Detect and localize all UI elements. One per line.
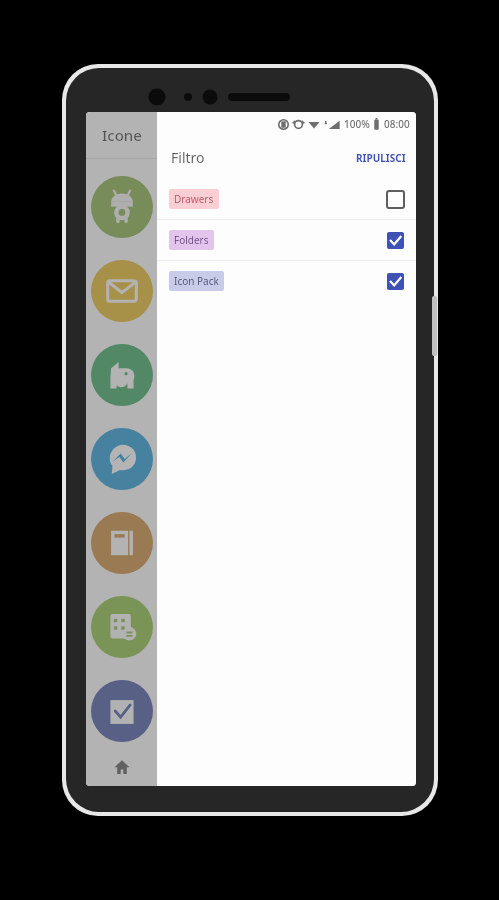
button[interactable]: App icon — [86, 333, 157, 417]
button[interactable]: RIPULISCI — [346, 143, 416, 173]
staticText: Icon Pack — [174, 274, 219, 288]
staticText: Icone — [102, 125, 142, 145]
button[interactable]: Folders — [157, 220, 416, 260]
button[interactable]: App icon — [86, 501, 157, 585]
staticText: Folders — [174, 233, 209, 247]
button[interactable]: Home — [86, 748, 157, 786]
staticText: 100% — [344, 117, 370, 131]
staticText: Filtro — [171, 148, 205, 167]
staticText: Drawers — [174, 192, 214, 206]
button[interactable]: Icon Pack — [157, 261, 416, 301]
staticText: 08:00 — [384, 117, 410, 131]
button[interactable]: App icon — [86, 585, 157, 669]
button[interactable]: App icon — [86, 669, 157, 753]
button[interactable]: App icon — [86, 165, 157, 249]
button[interactable]: Drawers — [157, 179, 416, 219]
staticText: RIPULISCI — [356, 151, 406, 165]
button[interactable]: App icon — [86, 417, 157, 501]
button[interactable]: App icon — [86, 249, 157, 333]
